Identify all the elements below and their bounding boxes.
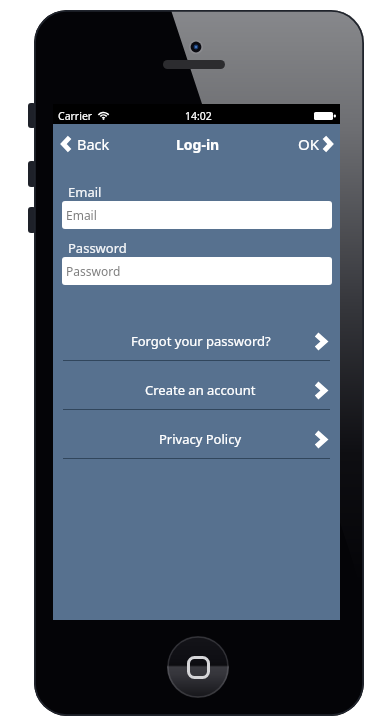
staticText: Email: [66, 207, 97, 223]
staticText: Email: [68, 183, 102, 201]
button[interactable]: Email: [62, 201, 332, 229]
button[interactable]: Back: [57, 130, 118, 162]
staticText: Password: [68, 239, 127, 257]
button[interactable]: Create an account: [53, 361, 340, 410]
staticText: Carrier: [58, 109, 93, 123]
staticText: Privacy Policy: [159, 430, 242, 448]
staticText: Password: [66, 263, 121, 279]
button[interactable]: Privacy Policy: [53, 410, 340, 459]
button[interactable]: Forgot your password?: [53, 312, 340, 361]
button[interactable]: OK: [294, 130, 339, 162]
staticText: Forgot your password?: [131, 332, 271, 350]
staticText: Log-in: [176, 135, 220, 154]
staticText: Create an account: [145, 381, 256, 399]
staticText: Back: [77, 134, 110, 154]
button[interactable]: Password: [62, 257, 332, 285]
staticText: 14:02: [185, 109, 212, 123]
staticText: OK: [298, 134, 320, 154]
